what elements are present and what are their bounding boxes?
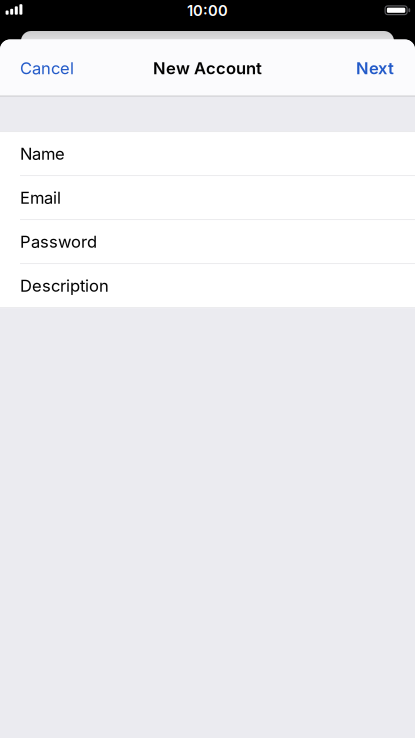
- staticText: Email: [20, 188, 61, 208]
- button[interactable]: Name: [0, 132, 415, 175]
- button[interactable]: Cancel: [20, 58, 74, 78]
- staticText: New Account: [153, 58, 262, 78]
- staticText: 10:00: [187, 2, 228, 19]
- staticText: Description: [20, 276, 109, 296]
- button[interactable]: Next: [356, 58, 394, 78]
- button[interactable]: Email: [0, 176, 415, 219]
- button[interactable]: Password: [0, 220, 415, 263]
- staticText: Next: [356, 58, 394, 78]
- staticText: Cancel: [20, 58, 74, 78]
- button[interactable]: Description: [0, 264, 415, 307]
- staticText: Password: [20, 232, 97, 252]
- staticText: Name: [20, 144, 65, 164]
